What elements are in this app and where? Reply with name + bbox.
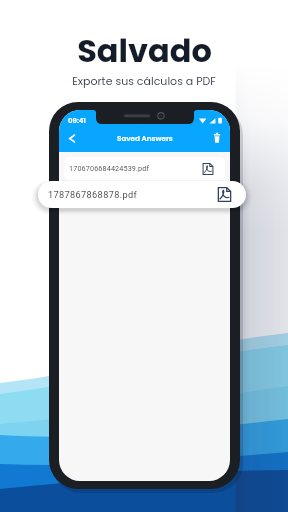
button[interactable]: 1706706684424539.pdf [64,157,225,180]
button[interactable]: 1787867868878.pdf [38,181,246,208]
staticText: 09:41 [68,116,86,126]
staticText: Exporte sus cálculos a PDF [72,73,216,88]
staticText: 1706706684424539.pdf [69,164,150,172]
button[interactable]: Back [61,127,83,149]
staticText: 1787867868878.pdf [48,189,138,200]
button[interactable]: Delete all [206,127,228,149]
staticText: Salvado [77,28,212,73]
staticText: Saved Answers [117,133,173,143]
